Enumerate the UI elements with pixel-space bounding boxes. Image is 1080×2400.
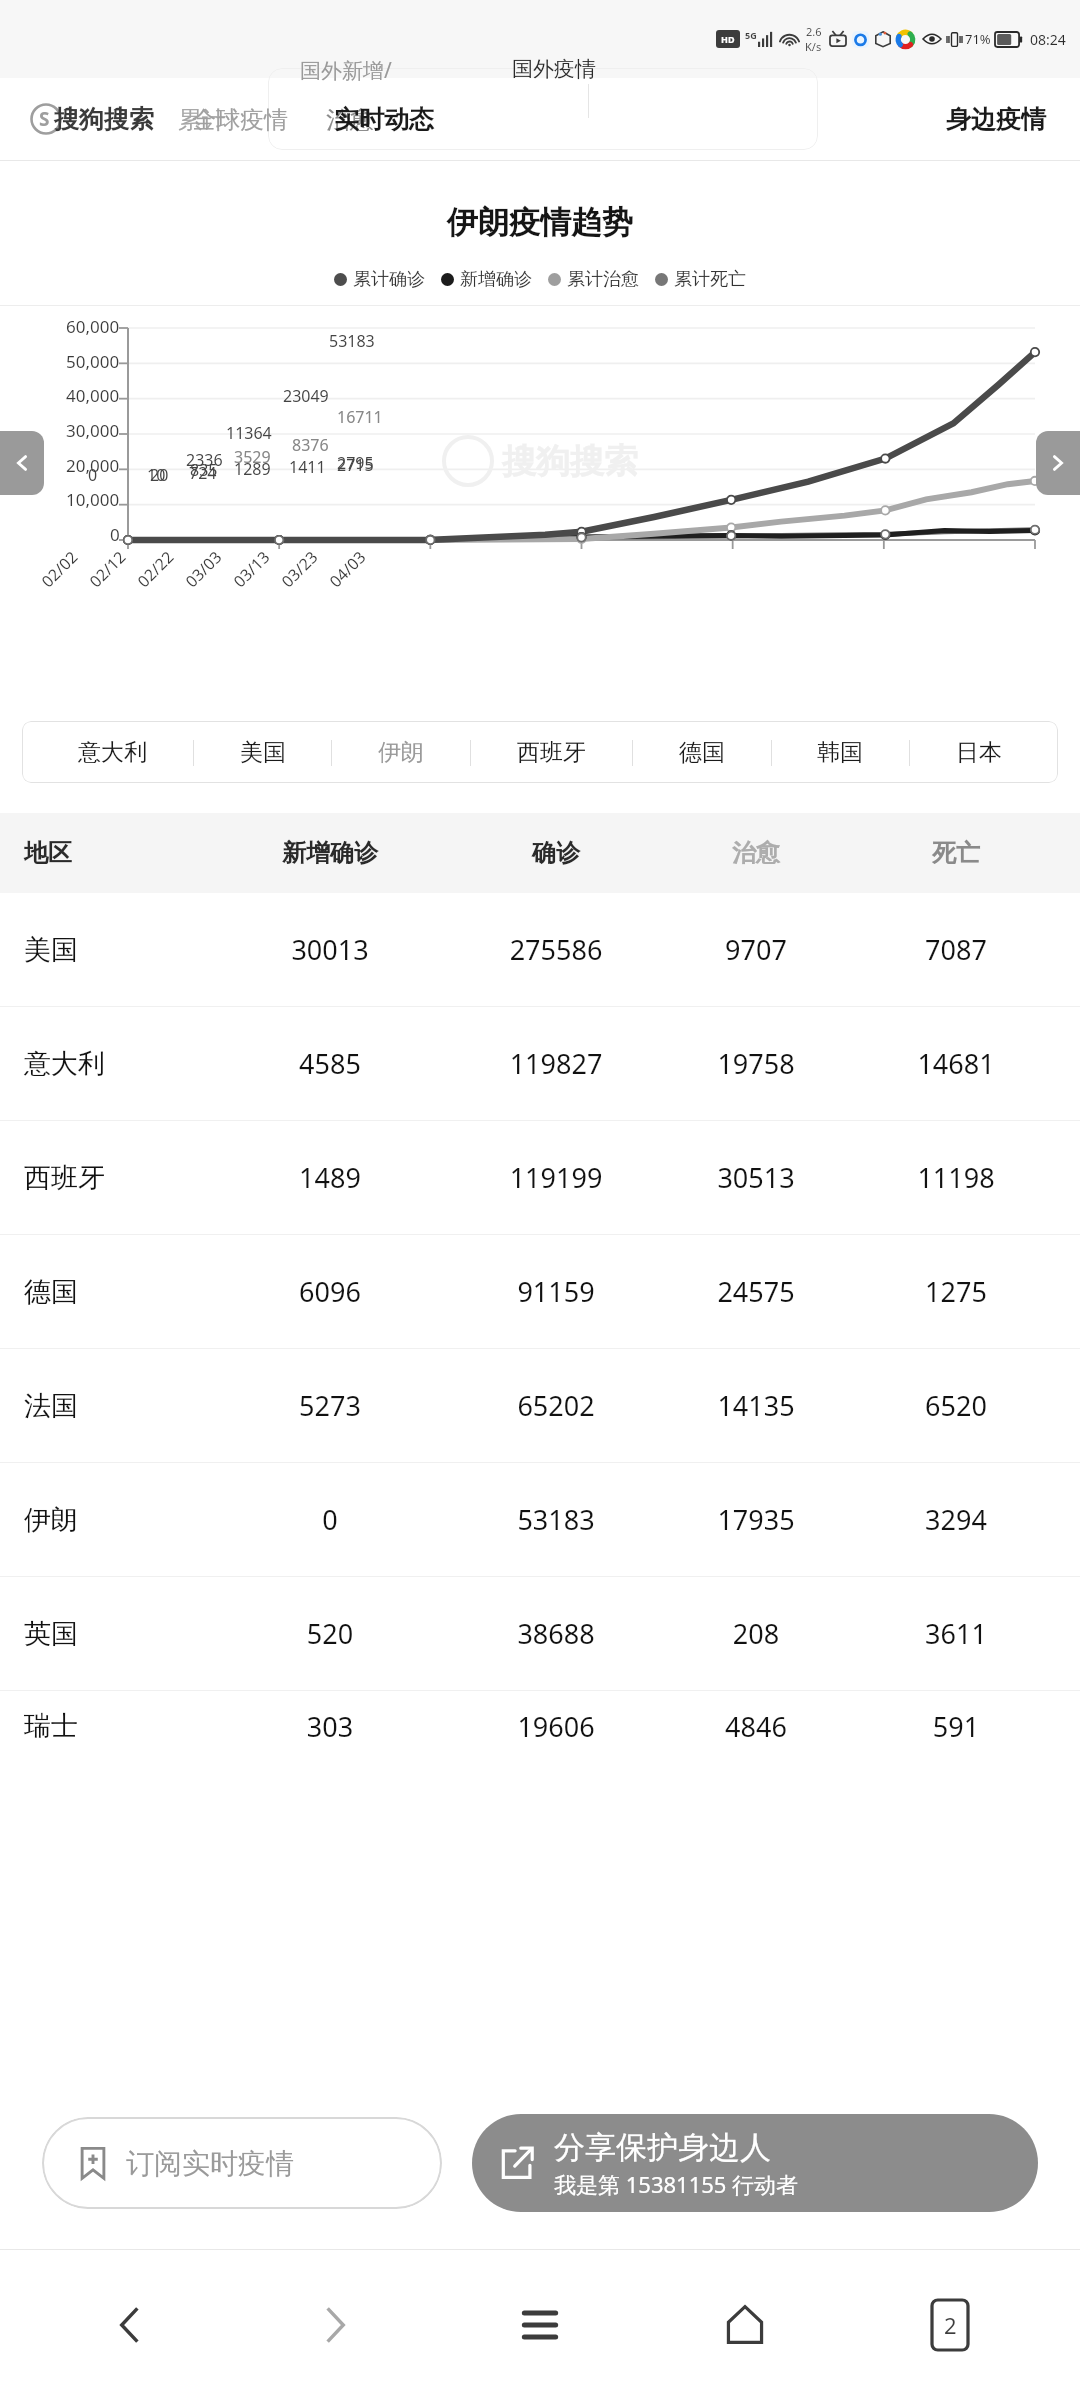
button[interactable]: 分享保护身边人: [472, 2114, 1038, 2212]
staticText: 治愈: [656, 838, 856, 868]
button[interactable]: Back: [55, 2250, 205, 2400]
staticText: 瑞士: [24, 1709, 204, 1743]
staticText: 地区: [24, 838, 204, 868]
button[interactable]: 意大利: [70, 730, 155, 775]
staticText: 91159: [456, 1273, 656, 1310]
staticText: 伊朗疫情趋势: [0, 203, 1080, 242]
staticText: 303: [204, 1708, 456, 1745]
staticText: 德国: [24, 1275, 204, 1309]
staticText: 03/03: [180, 546, 226, 592]
staticText: 2: [944, 2310, 957, 2340]
staticText: 520: [204, 1615, 456, 1652]
staticText: 3294: [856, 1501, 1056, 1538]
button[interactable]: 西班牙: [509, 730, 594, 775]
button[interactable]: Forward: [260, 2250, 410, 2400]
staticText: 30013: [204, 931, 456, 968]
button[interactable]: 意大利: [0, 1007, 1080, 1120]
staticText: 17935: [656, 1501, 856, 1538]
staticText: 53183: [329, 330, 375, 352]
staticText: 治愈: [326, 105, 374, 135]
staticText: 累计死亡: [674, 268, 746, 291]
staticText: 02/22: [132, 546, 178, 592]
staticText: 我是第 15381155 行动者: [554, 2169, 799, 2199]
staticText: 20,000: [66, 454, 120, 477]
staticText: 60,000: [66, 315, 120, 338]
staticText: 美国: [24, 933, 204, 967]
button[interactable]: 法国: [0, 1349, 1080, 1462]
staticText: 16711: [337, 406, 383, 428]
staticText: 30513: [656, 1159, 856, 1196]
staticText: 累计: [178, 105, 226, 135]
staticText: 美国: [240, 738, 286, 767]
staticText: 2795: [337, 452, 374, 474]
staticText: 全球疫情: [192, 105, 288, 135]
button[interactable]: Home: [670, 2250, 820, 2400]
staticText: 法国: [24, 1389, 204, 1423]
staticText: 2.6: [806, 24, 822, 39]
staticText: 1275: [856, 1273, 1056, 1310]
button[interactable]: 德国: [0, 1235, 1080, 1348]
staticText: 8376: [292, 434, 329, 456]
staticText: 3529: [234, 446, 271, 468]
button[interactable]: 订阅实时疫情: [42, 2117, 442, 2209]
button[interactable]: 日本: [948, 730, 1010, 775]
staticText: 1289: [234, 458, 271, 480]
staticText: 4846: [656, 1708, 856, 1745]
staticText: 19758: [656, 1045, 856, 1082]
staticText: 新增确诊: [204, 838, 456, 868]
staticText: 实时动态: [334, 104, 434, 135]
staticText: 14135: [656, 1387, 856, 1424]
staticText: 1489: [204, 1159, 456, 1196]
staticText: 意大利: [78, 738, 147, 767]
staticText: 伊朗: [378, 738, 424, 767]
button[interactable]: 瑞士: [0, 1691, 1080, 1761]
staticText: 71%: [965, 30, 991, 48]
staticText: 订阅实时疫情: [126, 2146, 294, 2181]
button[interactable]: Menu: [465, 2250, 615, 2400]
staticText: 死亡: [856, 838, 1056, 868]
staticText: 19606: [456, 1708, 656, 1745]
staticText: 02/12: [84, 546, 130, 592]
button[interactable]: 韩国: [809, 730, 871, 775]
button[interactable]: Tabs, 2 open: [875, 2250, 1025, 2400]
button[interactable]: 美国: [232, 730, 294, 775]
staticText: 14681: [856, 1045, 1056, 1082]
staticText: 伊朗: [24, 1503, 204, 1537]
staticText: 西班牙: [517, 738, 586, 767]
button[interactable]: 伊朗: [0, 1463, 1080, 1576]
button[interactable]: Previous: [0, 431, 44, 495]
staticText: 53183: [456, 1501, 656, 1538]
button[interactable]: Next: [1036, 431, 1080, 495]
button[interactable]: 美国: [0, 893, 1080, 1006]
staticText: 38688: [456, 1615, 656, 1652]
staticText: 5273: [204, 1387, 456, 1424]
staticText: 40,000: [66, 384, 120, 407]
staticText: 累计治愈: [567, 268, 639, 291]
button[interactable]: 伊朗: [370, 730, 432, 775]
staticText: 24575: [656, 1273, 856, 1310]
staticText: 3611: [856, 1615, 1056, 1652]
staticText: 7087: [856, 931, 1056, 968]
staticText: 6520: [856, 1387, 1056, 1424]
button[interactable]: 英国: [0, 1577, 1080, 1690]
staticText: 119827: [456, 1045, 656, 1082]
staticText: 搜狗搜索: [54, 104, 154, 135]
staticText: 国外新增/: [300, 56, 392, 85]
staticText: 11364: [226, 422, 272, 444]
staticText: 累计确诊: [353, 268, 425, 291]
staticText: 5G: [745, 29, 757, 41]
staticText: 04/03: [324, 546, 370, 592]
staticText: 20: [150, 464, 169, 486]
staticText: 208: [656, 1615, 856, 1652]
staticText: 日本: [956, 738, 1002, 767]
staticText: 10,000: [66, 488, 120, 511]
staticText: 0: [88, 464, 98, 486]
staticText: 韩国: [817, 738, 863, 767]
button[interactable]: 西班牙: [0, 1121, 1080, 1234]
staticText: 搜狗搜索: [502, 440, 638, 483]
staticText: K/s: [805, 39, 822, 54]
button[interactable]: 身边疫情: [934, 96, 1058, 143]
button[interactable]: 德国: [671, 730, 733, 775]
staticText: 1411: [289, 456, 326, 478]
